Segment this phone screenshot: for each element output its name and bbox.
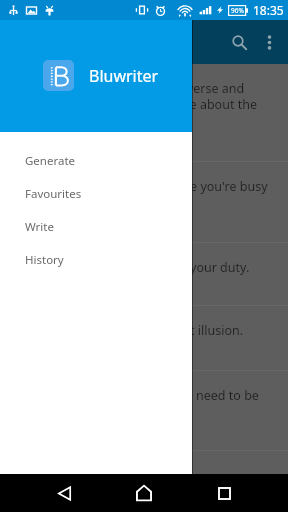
button[interactable]: Favourites (0, 177, 192, 210)
staticText: History (25, 252, 64, 268)
button[interactable]: Look into nature, into the universe and … (0, 64, 288, 161)
staticText: Life is nothing but a persistent illusio… (16, 322, 244, 339)
button[interactable]: Search (224, 27, 254, 57)
staticText: 96% (231, 6, 244, 15)
button[interactable]: Your life is what happens while you're b… (0, 162, 288, 242)
staticText: The greatest glory is in doing your duty… (16, 259, 250, 276)
staticText: Write (25, 219, 54, 235)
staticText: Favourites (25, 186, 82, 202)
staticText: Bluwriter (89, 65, 159, 87)
button[interactable]: The greatest glory is in doing your duty… (0, 243, 288, 305)
button[interactable]: Life is nothing but a persistent illusio… (0, 306, 288, 370)
staticText: Your life is what happens while you're b… (16, 178, 270, 210)
button[interactable]: History (0, 243, 192, 276)
button[interactable]: Back (44, 474, 84, 512)
button[interactable]: Home (124, 474, 164, 512)
staticText: You should be the change you need to be (16, 387, 259, 404)
button[interactable]: Generate (0, 144, 192, 177)
button[interactable]: More options (254, 27, 284, 57)
button[interactable]: Recents (204, 474, 244, 512)
staticText: 18:35 (253, 2, 284, 18)
staticText: Generate (25, 153, 76, 169)
button[interactable]: Write (0, 210, 192, 243)
button[interactable]: You should be the change you need to be (0, 371, 288, 450)
staticText: Look into nature, into the universe and … (16, 80, 270, 127)
